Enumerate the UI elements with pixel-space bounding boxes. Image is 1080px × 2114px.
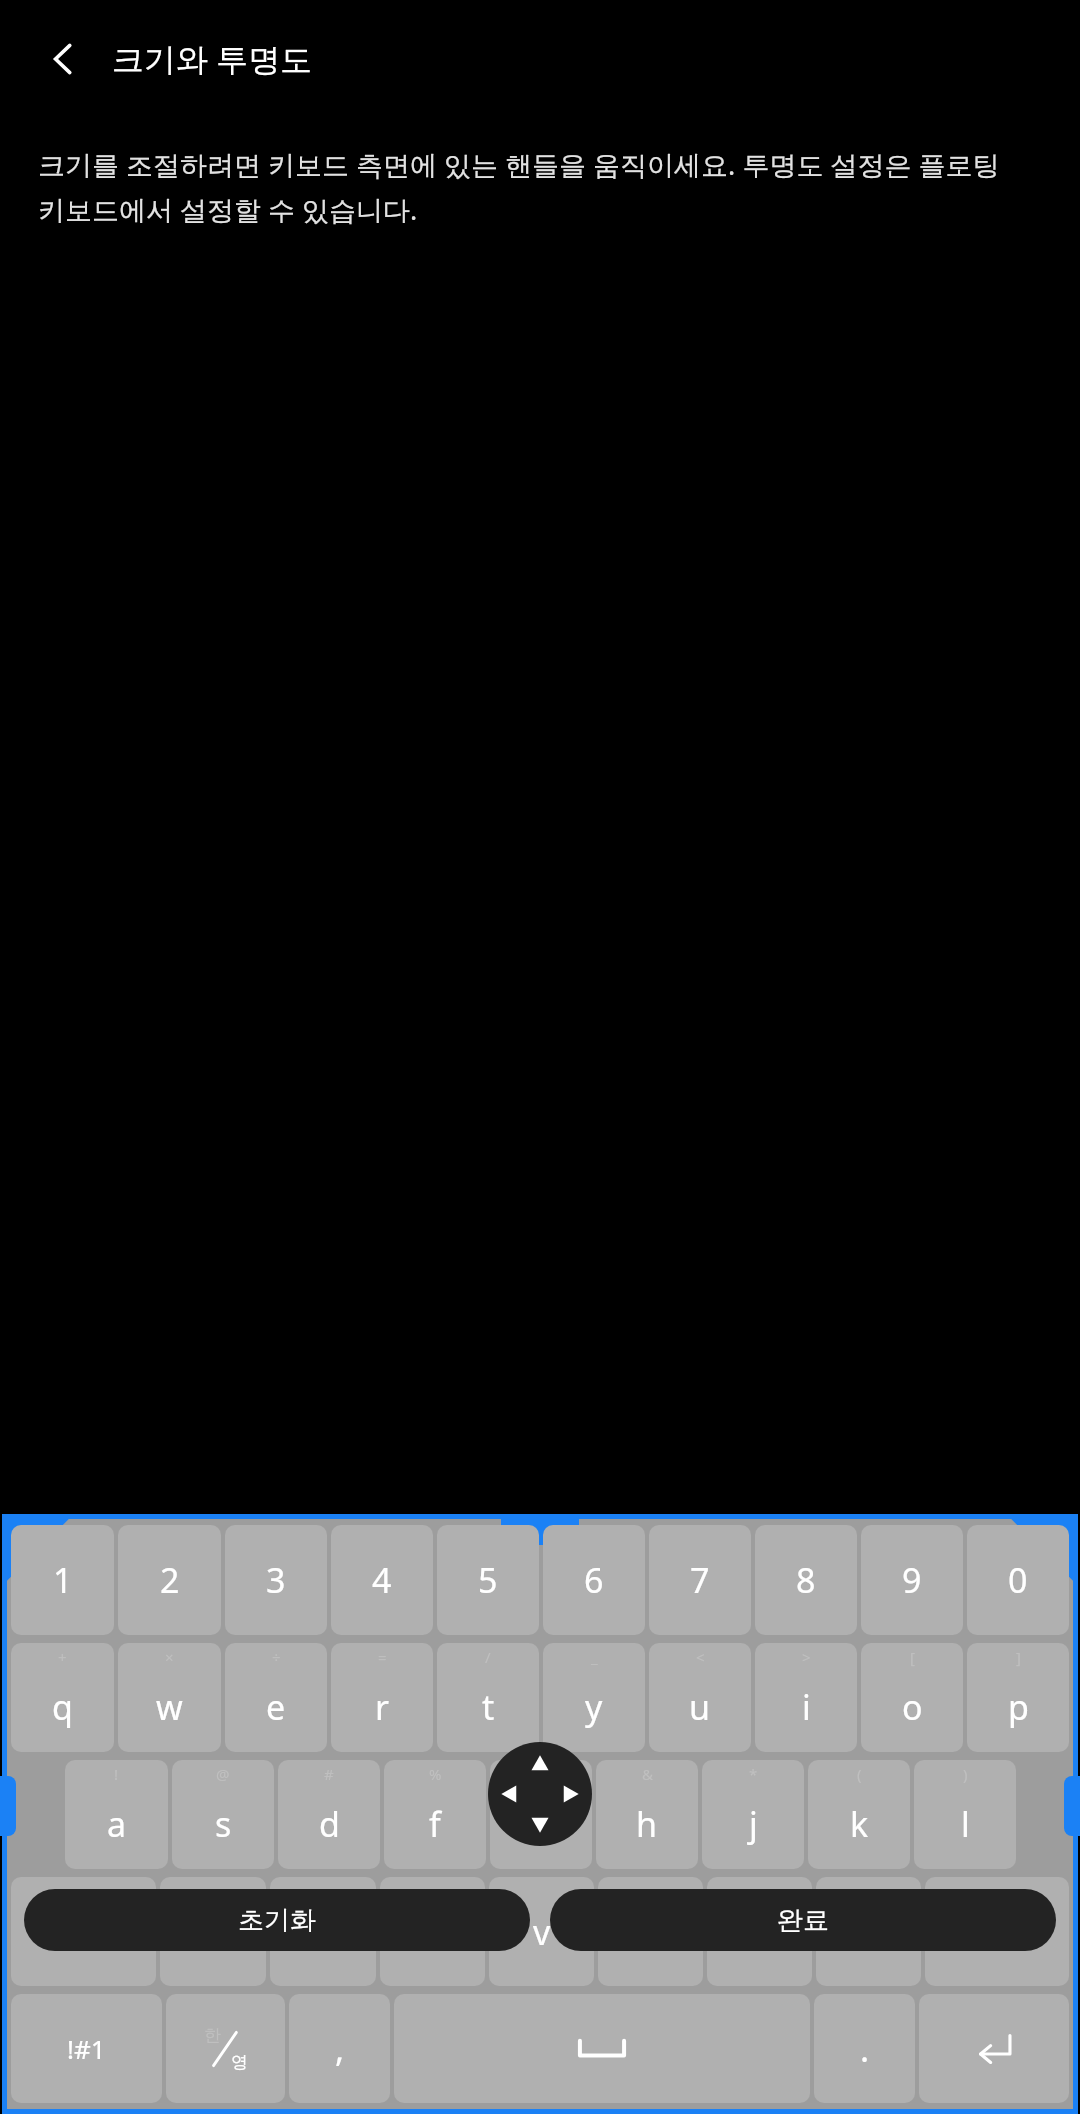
staticText: × — [165, 1647, 174, 1667]
staticText: ) — [963, 1764, 968, 1784]
staticText: 0 — [1008, 1557, 1028, 1603]
staticText: % — [429, 1764, 442, 1784]
button[interactable]: 1 — [11, 1525, 114, 1635]
button[interactable]: > — [755, 1643, 857, 1752]
button[interactable]: 6 — [543, 1525, 645, 1635]
staticText: f — [429, 1801, 441, 1847]
button[interactable]: z — [160, 1877, 266, 1986]
button[interactable]: Space — [394, 1994, 810, 2103]
staticText: m — [853, 1909, 885, 1955]
staticText: 8 — [796, 1557, 816, 1603]
button[interactable]: Enter — [919, 1994, 1069, 2103]
button[interactable]: 5 — [437, 1525, 539, 1635]
button[interactable]: Back — [30, 26, 96, 92]
button[interactable]: ] — [967, 1643, 1069, 1752]
button[interactable]: 3 — [225, 1525, 327, 1635]
button[interactable]: / — [437, 1643, 539, 1752]
staticText: ÷ — [272, 1647, 281, 1667]
staticText: 2 — [160, 1557, 180, 1603]
staticText: 영 — [231, 2052, 248, 2073]
button[interactable]: 4 — [331, 1525, 433, 1635]
button[interactable]: @ — [172, 1760, 274, 1869]
button[interactable]: 9 — [861, 1525, 963, 1635]
staticText: d — [319, 1801, 340, 1847]
button[interactable]: % — [384, 1760, 486, 1869]
staticText: x — [314, 1909, 332, 1955]
button[interactable]: . — [814, 1994, 915, 2103]
staticText: j — [749, 1801, 758, 1847]
button[interactable]: m — [816, 1877, 921, 1986]
staticText: = — [378, 1647, 387, 1667]
staticText: a — [107, 1801, 127, 1847]
staticText: o — [902, 1684, 923, 1730]
button[interactable]: Resize handle top — [501, 1519, 579, 1545]
staticText: q — [52, 1684, 73, 1730]
button[interactable]: 8 — [755, 1525, 857, 1635]
button[interactable]: = — [331, 1643, 433, 1752]
staticText: @ — [216, 1764, 230, 1784]
button[interactable]: ÷ — [225, 1643, 327, 1752]
button[interactable]: n — [707, 1877, 812, 1986]
button[interactable]: # — [278, 1760, 380, 1869]
staticText: 크기와 투명도 — [112, 37, 313, 81]
staticText: / — [485, 1647, 491, 1667]
staticText: 완료 — [777, 1904, 829, 1937]
button[interactable]: v — [489, 1877, 594, 1986]
button[interactable]: 초기화 — [24, 1889, 530, 1951]
staticText: ^ — [537, 1764, 546, 1784]
button[interactable]: !#1 — [11, 1994, 162, 2103]
staticText: p — [1008, 1684, 1029, 1730]
staticText: + — [58, 1647, 67, 1667]
staticText: & — [642, 1764, 653, 1784]
button[interactable]: & — [596, 1760, 698, 1869]
button[interactable]: ! — [65, 1760, 168, 1869]
button[interactable]: Resize handle left — [0, 1776, 16, 1836]
button[interactable]: [ — [861, 1643, 963, 1752]
staticText: . — [860, 2026, 870, 2072]
button[interactable]: _ — [543, 1643, 645, 1752]
button[interactable]: ) — [914, 1760, 1016, 1869]
button[interactable]: Shift — [11, 1877, 156, 1986]
button[interactable]: Resize handle right — [1064, 1776, 1080, 1836]
staticText: > — [802, 1647, 811, 1667]
button[interactable]: c — [380, 1877, 485, 1986]
staticText: 한 — [204, 2025, 221, 2046]
button[interactable]: × — [118, 1643, 221, 1752]
staticText: e — [266, 1684, 286, 1730]
button[interactable]: * — [702, 1760, 804, 1869]
staticText: ! — [114, 1764, 119, 1784]
staticText: z — [205, 1909, 221, 1955]
staticText: v — [533, 1909, 551, 1955]
staticText: 6 — [584, 1557, 604, 1603]
button[interactable]: 0 — [967, 1525, 1069, 1635]
button[interactable]: b — [598, 1877, 703, 1986]
staticText: t — [482, 1684, 495, 1730]
button[interactable]: ( — [808, 1760, 910, 1869]
staticText: h — [636, 1801, 658, 1847]
staticText: !#1 — [67, 2031, 106, 2066]
button[interactable]: Backspace — [925, 1877, 1069, 1986]
staticText: ( — [857, 1764, 862, 1784]
staticText: l — [961, 1801, 970, 1847]
button[interactable]: 완료 — [550, 1889, 1056, 1951]
button[interactable]: , — [289, 1994, 390, 2103]
staticText: 7 — [690, 1557, 710, 1603]
staticText: < — [696, 1647, 705, 1667]
staticText: k — [850, 1801, 869, 1847]
button[interactable]: Move keyboard — [488, 1742, 592, 1846]
button[interactable]: 2 — [118, 1525, 221, 1635]
staticText: 초기화 — [238, 1904, 316, 1937]
staticText: r — [375, 1684, 390, 1730]
button[interactable]: + — [11, 1643, 114, 1752]
button[interactable]: Language — [166, 1994, 285, 2103]
staticText: ] — [1016, 1647, 1021, 1667]
button[interactable]: x — [270, 1877, 376, 1986]
button[interactable]: < — [649, 1643, 751, 1752]
staticText: c — [424, 1909, 441, 1955]
staticText: [ — [910, 1647, 915, 1667]
staticText: w — [156, 1684, 183, 1730]
button[interactable]: ^ — [490, 1760, 592, 1869]
staticText: b — [640, 1909, 661, 1955]
button[interactable]: 7 — [649, 1525, 751, 1635]
